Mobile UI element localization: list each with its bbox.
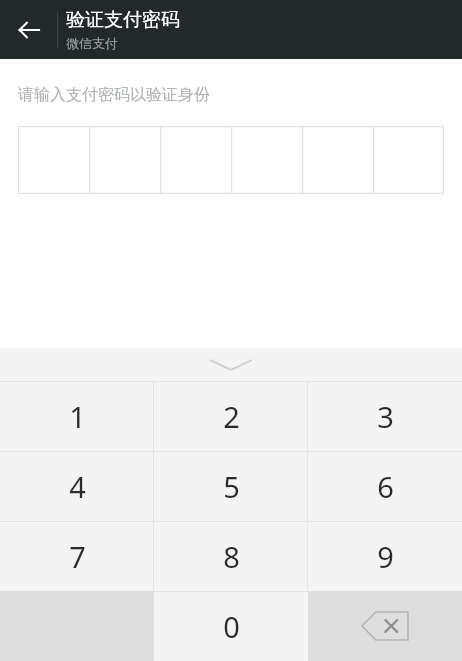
button[interactable]: Backspace: [308, 591, 462, 661]
staticText: 验证支付密码: [66, 8, 180, 32]
button[interactable]: 8: [154, 521, 308, 591]
staticText: 请输入支付密码以验证身份: [18, 85, 210, 105]
staticText: 2: [223, 397, 240, 436]
staticText: 8: [223, 537, 240, 576]
button[interactable]: 4: [0, 451, 154, 521]
button[interactable]: Back: [0, 0, 58, 59]
button[interactable]: 2: [154, 381, 308, 451]
staticText: 3: [377, 397, 394, 436]
button[interactable]: 7: [0, 521, 154, 591]
staticText: 4: [69, 467, 86, 506]
button[interactable]: 0: [154, 591, 308, 661]
staticText: 1: [69, 397, 86, 436]
button[interactable]: [18, 126, 444, 194]
staticText: 7: [69, 537, 86, 576]
button[interactable]: 5: [154, 451, 308, 521]
staticText: 5: [223, 467, 240, 506]
button[interactable]: 3: [308, 381, 462, 451]
button[interactable]: 1: [0, 381, 154, 451]
staticText: 微信支付: [66, 35, 118, 51]
button[interactable]: 9: [308, 521, 462, 591]
staticText: 9: [377, 537, 394, 576]
staticText: 0: [223, 607, 240, 646]
button[interactable]: 6: [308, 451, 462, 521]
staticText: 6: [377, 467, 394, 506]
